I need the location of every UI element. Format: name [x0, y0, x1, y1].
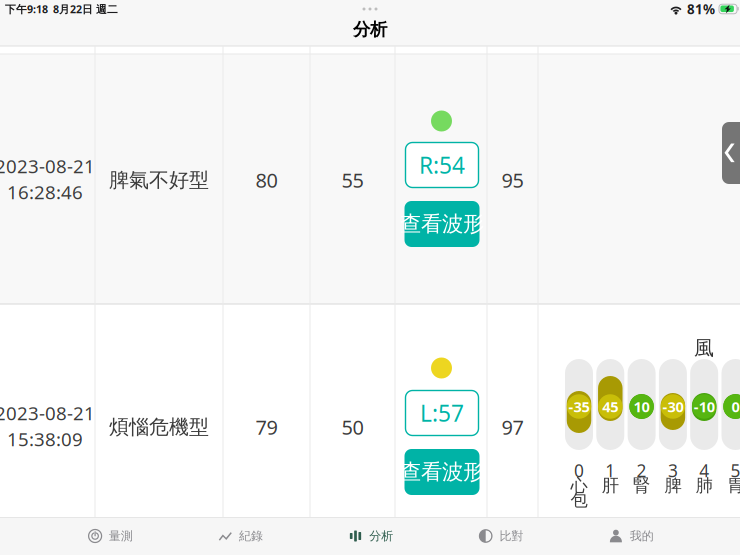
- staticText: 10: [634, 397, 650, 416]
- staticText: 腎: [633, 475, 650, 496]
- staticText: 15:38:09: [7, 427, 83, 451]
- staticText: 下午9:18: [5, 2, 48, 16]
- staticText: 胃: [727, 475, 740, 496]
- staticText: 81%: [687, 0, 715, 18]
- staticText: 8月22日 週二: [53, 2, 118, 16]
- staticText: 風: [694, 336, 714, 360]
- staticText: 煩惱危機型: [109, 415, 209, 439]
- staticText: 我的: [630, 529, 654, 543]
- staticText: 79: [255, 414, 277, 440]
- staticText: 80: [255, 167, 277, 193]
- staticText: 95: [501, 167, 523, 193]
- staticText: 45: [602, 397, 618, 416]
- staticText: 心: [570, 475, 587, 496]
- staticText: 分析: [369, 529, 393, 543]
- staticText: 脾氣不好型: [109, 168, 209, 192]
- button[interactable]: 量測: [45, 517, 176, 555]
- staticText: 包: [570, 489, 587, 511]
- staticText: 50: [341, 414, 363, 440]
- staticText: 肺: [696, 475, 713, 496]
- staticText: 2023-08-21: [0, 154, 95, 178]
- staticText: 5: [730, 459, 740, 482]
- staticText: -30: [662, 397, 683, 416]
- staticText: 肝: [602, 475, 619, 496]
- button[interactable]: 比對: [436, 517, 566, 555]
- staticText: 查看波形: [400, 459, 484, 485]
- staticText: 4: [699, 459, 709, 482]
- staticText: 16:28:46: [7, 180, 83, 204]
- button[interactable]: Previous page: [722, 122, 740, 184]
- staticText: 查看波形: [400, 211, 484, 237]
- staticText: -10: [694, 397, 715, 416]
- button[interactable]: R:54: [405, 142, 478, 187]
- button[interactable]: 查看波形: [404, 449, 479, 495]
- staticText: 3: [668, 459, 678, 482]
- staticText: -35: [568, 397, 589, 416]
- staticText: R:54: [419, 150, 465, 180]
- button[interactable]: L:57: [405, 390, 478, 435]
- staticText: 脾: [664, 475, 681, 496]
- button[interactable]: 查看波形: [404, 201, 479, 247]
- button[interactable]: 我的: [566, 517, 696, 555]
- staticText: 55: [341, 167, 363, 193]
- staticText: 97: [501, 414, 523, 440]
- staticText: 2: [637, 459, 647, 482]
- staticText: 2023-08-21: [0, 401, 95, 425]
- staticText: 量測: [109, 529, 133, 543]
- staticText: 0: [731, 397, 739, 416]
- button[interactable]: 分析: [306, 517, 436, 555]
- staticText: 1: [605, 459, 615, 482]
- staticText: 比對: [499, 529, 523, 543]
- staticText: L:57: [420, 398, 464, 428]
- staticText: 0: [574, 459, 584, 482]
- staticText: 紀錄: [239, 529, 263, 543]
- staticText: 分析: [353, 19, 387, 40]
- button[interactable]: 紀錄: [176, 517, 306, 555]
